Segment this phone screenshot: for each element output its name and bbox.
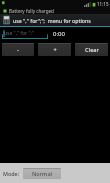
staticText: Normal (32, 170, 53, 178)
button[interactable]: App icon, navigate up (2, 15, 11, 25)
staticText: - (17, 46, 19, 54)
staticText: Clear (85, 46, 99, 54)
button[interactable]: Time entry field (2, 28, 48, 39)
staticText: + (53, 46, 57, 54)
button[interactable]: + (38, 43, 71, 56)
staticText: use "," for";"; menu for options (13, 17, 91, 24)
button[interactable]: Clear (75, 43, 108, 56)
staticText: 0:00 (53, 30, 65, 38)
button[interactable]: - (2, 43, 34, 56)
staticText: 11:15 (97, 1, 109, 7)
staticText: Mode: (3, 170, 20, 177)
button[interactable]: Normal (23, 168, 61, 179)
staticText: Battery fully charged (9, 8, 54, 14)
staticText: use "," for ";" (4, 30, 34, 37)
